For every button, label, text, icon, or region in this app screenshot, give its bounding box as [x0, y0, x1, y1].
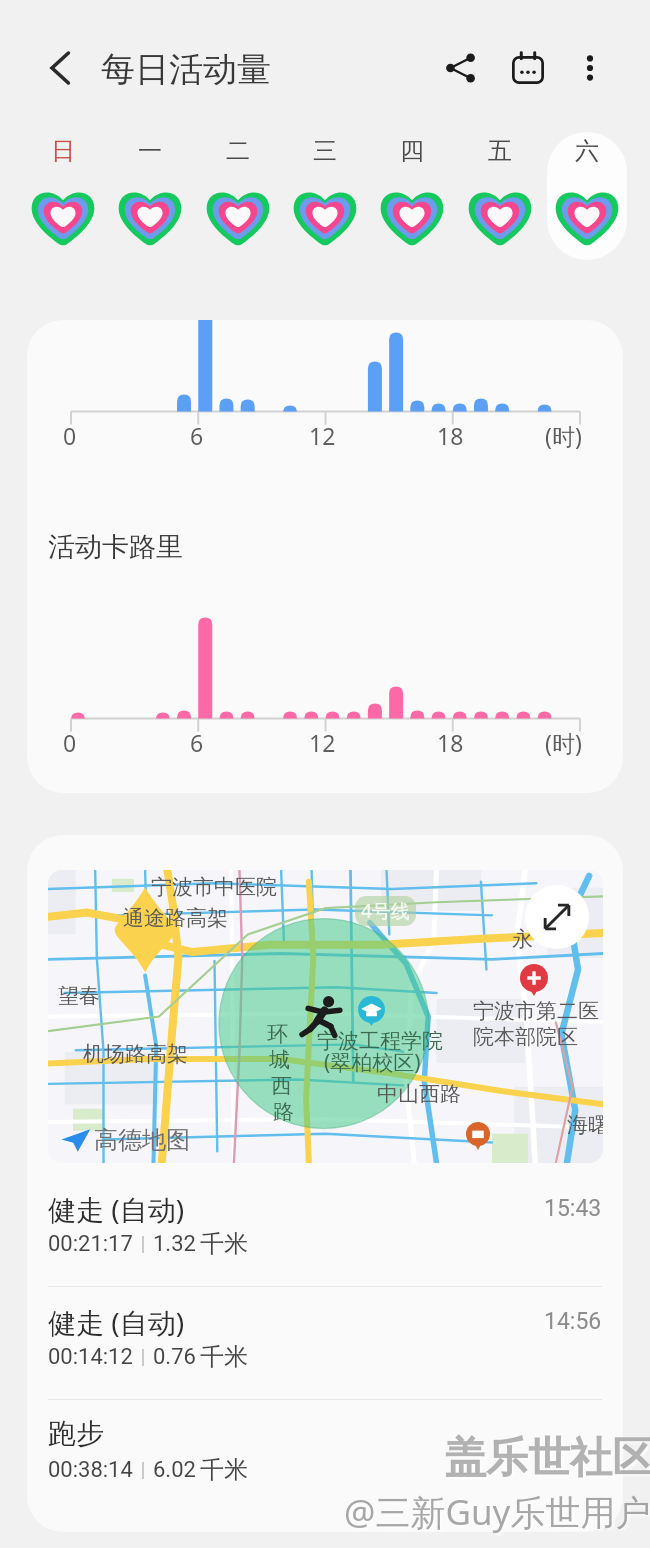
- staticText: 千米: [200, 1229, 248, 1259]
- staticText: 一: [138, 136, 162, 166]
- button[interactable]: 宁波市中医院: [48, 870, 603, 1163]
- staticText: 海曙: [567, 1112, 603, 1138]
- staticText: 城: [269, 1047, 290, 1073]
- staticText: 院本部院区: [473, 1024, 578, 1050]
- button[interactable]: Share: [437, 44, 485, 92]
- button[interactable]: 二: [198, 132, 278, 260]
- button[interactable]: 四: [372, 132, 452, 260]
- staticText: 0: [63, 727, 77, 758]
- button[interactable]: 一: [110, 132, 190, 260]
- staticText: 18: [437, 727, 464, 758]
- staticText: 中山西路: [377, 1081, 461, 1107]
- staticText: 四: [400, 136, 424, 166]
- staticText: @三新Guy乐世用户: [344, 1488, 650, 1536]
- staticText: 14:56: [544, 1308, 602, 1335]
- staticText: 宁波市第二医: [473, 998, 599, 1024]
- staticText: (翠柏校区): [324, 1048, 421, 1077]
- staticText: 三: [313, 136, 337, 166]
- button[interactable]: 跑步: [27, 1400, 623, 1513]
- staticText: 15:43: [544, 1195, 602, 1222]
- staticText: 永: [512, 926, 533, 952]
- staticText: 千米: [200, 1342, 248, 1372]
- staticText: 通途路高架: [123, 905, 228, 931]
- staticText: 西: [271, 1073, 292, 1099]
- button[interactable]: 健走 (自动): [27, 1287, 623, 1400]
- staticText: 高德地图: [94, 1125, 190, 1155]
- staticText: 00:38:14: [48, 1457, 133, 1483]
- button[interactable]: 六: [547, 132, 627, 260]
- staticText: 盖乐世社区: [444, 1432, 650, 1485]
- staticText: 望春: [58, 983, 100, 1009]
- button[interactable]: 健走 (自动): [27, 1174, 623, 1287]
- staticText: 健走 (自动): [48, 1303, 185, 1341]
- button[interactable]: Calendar: [504, 44, 552, 92]
- button[interactable]: 三: [285, 132, 365, 260]
- staticText: 跑步: [48, 1416, 104, 1451]
- staticText: 机场路高架: [83, 1041, 188, 1067]
- staticText: (时): [545, 727, 582, 758]
- staticText: 宁波工程学院: [317, 1028, 443, 1054]
- staticText: 千米: [200, 1455, 248, 1485]
- staticText: 1.32: [153, 1231, 196, 1257]
- button[interactable]: More options: [566, 44, 614, 92]
- staticText: 12: [309, 727, 336, 758]
- staticText: 00:21:17: [48, 1231, 133, 1257]
- staticText: 五: [488, 136, 512, 166]
- staticText: 环: [267, 1021, 288, 1047]
- staticText: 路: [273, 1099, 294, 1125]
- staticText: 12: [309, 420, 336, 451]
- staticText: 6: [190, 420, 204, 451]
- button[interactable]: Back: [35, 43, 85, 93]
- staticText: 0: [63, 420, 77, 451]
- staticText: 每日活动量: [101, 48, 271, 91]
- staticText: 六: [575, 136, 599, 166]
- staticText: 6.02: [153, 1457, 196, 1483]
- staticText: 健走 (自动): [48, 1190, 185, 1228]
- staticText: 4号线: [361, 898, 410, 924]
- button[interactable]: Expand map: [525, 885, 589, 949]
- staticText: 宁波市中医院: [151, 874, 277, 900]
- staticText: 活动卡路里: [48, 530, 183, 564]
- staticText: 00:14:12: [48, 1344, 133, 1370]
- staticText: 6: [190, 727, 204, 758]
- staticText: (时): [545, 420, 582, 451]
- staticText: 二: [226, 136, 250, 166]
- staticText: 0.76: [153, 1344, 196, 1370]
- button[interactable]: 日: [23, 132, 103, 260]
- staticText: 18: [437, 420, 464, 451]
- button[interactable]: 五: [460, 132, 540, 260]
- staticText: 日: [51, 136, 75, 166]
- staticText: 5/31: [562, 258, 613, 260]
